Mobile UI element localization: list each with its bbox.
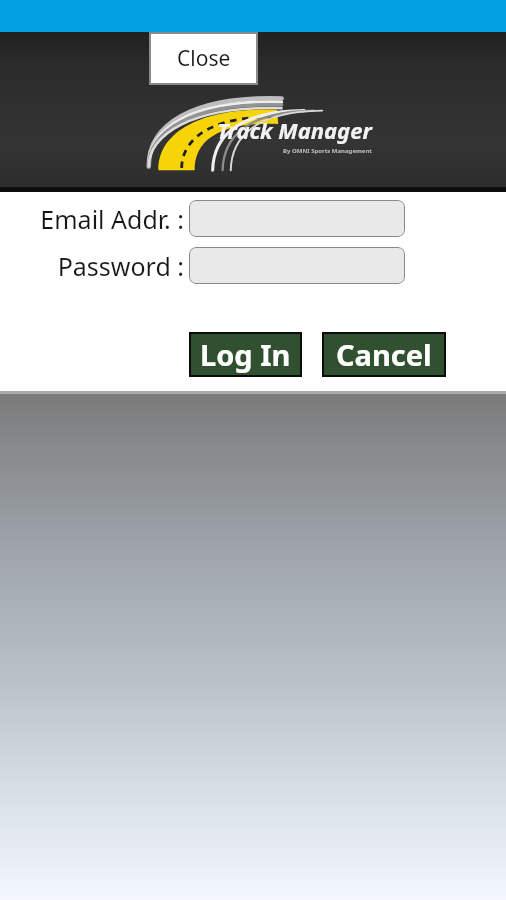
button[interactable]: Log In xyxy=(191,334,300,375)
staticText: Cancel xyxy=(336,335,432,374)
staticText: By OMNI Sports Management xyxy=(283,147,372,155)
staticText: Close xyxy=(177,44,231,73)
staticText: Log In xyxy=(200,335,291,374)
other: Track Manager logo xyxy=(146,92,372,168)
button[interactable]: Password : xyxy=(189,247,405,284)
button[interactable]: Cancel xyxy=(324,334,444,375)
staticText: Password : xyxy=(0,249,184,283)
button[interactable]: Close xyxy=(151,34,256,83)
staticText: Track Manager xyxy=(217,115,372,145)
staticText: Email Addr. : xyxy=(0,202,184,236)
button[interactable]: Email Addr. : xyxy=(189,200,405,237)
